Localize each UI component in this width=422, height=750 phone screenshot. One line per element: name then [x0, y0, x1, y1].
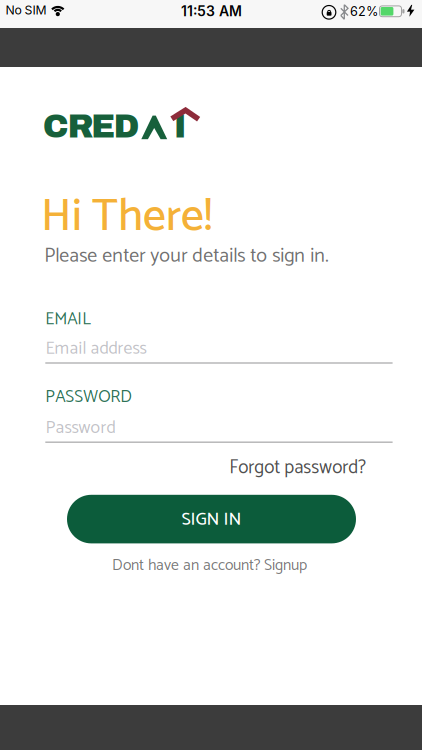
button[interactable]: Password — [45, 413, 393, 443]
staticText: PASSWORD — [45, 383, 132, 411]
staticText: SIGN IN — [181, 505, 241, 534]
staticText: Email address — [45, 334, 146, 363]
staticText: C — [43, 108, 69, 144]
staticText: Dont have an account? Signup — [112, 553, 307, 578]
staticText: Hi There! — [41, 180, 212, 254]
button[interactable]: SIGN IN — [67, 495, 356, 543]
staticText: Password — [45, 413, 115, 443]
staticText: No SIM — [5, 3, 46, 17]
button[interactable]: Dont have an account? Signup — [112, 553, 307, 578]
staticText: R — [67, 108, 93, 144]
staticText: E — [91, 108, 115, 144]
staticText: EMAIL — [45, 305, 91, 334]
button[interactable]: Email address — [45, 334, 393, 364]
staticText: I — [174, 108, 186, 144]
button[interactable]: Forgot password? — [229, 452, 366, 483]
staticText: 62% — [350, 4, 378, 19]
staticText: Forgot password? — [229, 452, 366, 483]
staticText: D — [113, 108, 139, 144]
staticText: Please enter your details to sign in. — [44, 240, 328, 272]
staticText: 11:53 AM — [181, 3, 242, 20]
